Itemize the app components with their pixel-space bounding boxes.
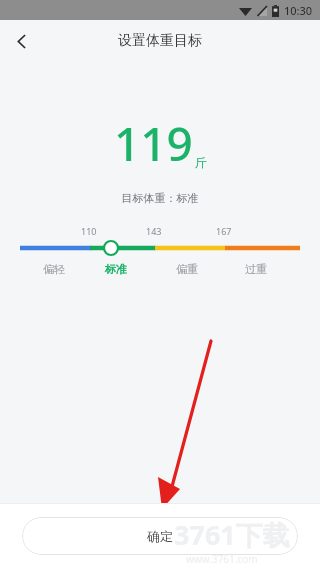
button[interactable]: 返回 (0, 20, 44, 62)
button[interactable] (0, 239, 320, 257)
staticText: 偏轻 (43, 262, 65, 276)
staticText: 设置体重目标 (118, 32, 202, 50)
staticText: 过重 (245, 262, 267, 276)
staticText: 3761下载 (174, 516, 290, 553)
staticText: 标准 (105, 262, 127, 276)
staticText: www.3761.com (186, 552, 258, 566)
staticText: 143 (146, 225, 162, 237)
staticText: 目标体重：标准 (0, 191, 320, 205)
staticText: 确定 (147, 528, 173, 544)
staticText: 119 (114, 112, 193, 175)
staticText: 偏重 (176, 262, 198, 276)
button[interactable]: 确定 (22, 517, 298, 555)
staticText: 斤 (195, 155, 207, 170)
staticText: 110 (81, 225, 97, 237)
staticText: 167 (216, 225, 232, 237)
staticText: 10:30 (284, 3, 313, 18)
